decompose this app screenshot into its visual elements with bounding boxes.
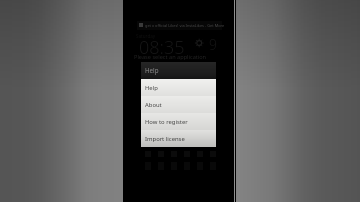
button[interactable]: How to register — [141, 113, 216, 130]
staticText: Import license — [145, 135, 185, 143]
staticText: get x official Likes! via InstaLikes - G… — [145, 23, 225, 28]
staticText: 9 — [209, 35, 217, 54]
button[interactable]: Help — [141, 79, 216, 96]
staticText: 08:35 — [139, 35, 185, 60]
staticText: Please select an application — [134, 53, 207, 61]
button[interactable]: Import license — [141, 130, 216, 147]
staticText: Help — [145, 84, 158, 92]
button[interactable]: get x official Likes! via InstaLikes - G… — [139, 21, 227, 29]
staticText: How to register — [145, 118, 188, 126]
button[interactable]: Help — [141, 62, 216, 79]
button[interactable]: About — [141, 96, 216, 113]
staticText: Help — [145, 66, 159, 74]
staticText: About — [145, 101, 162, 109]
